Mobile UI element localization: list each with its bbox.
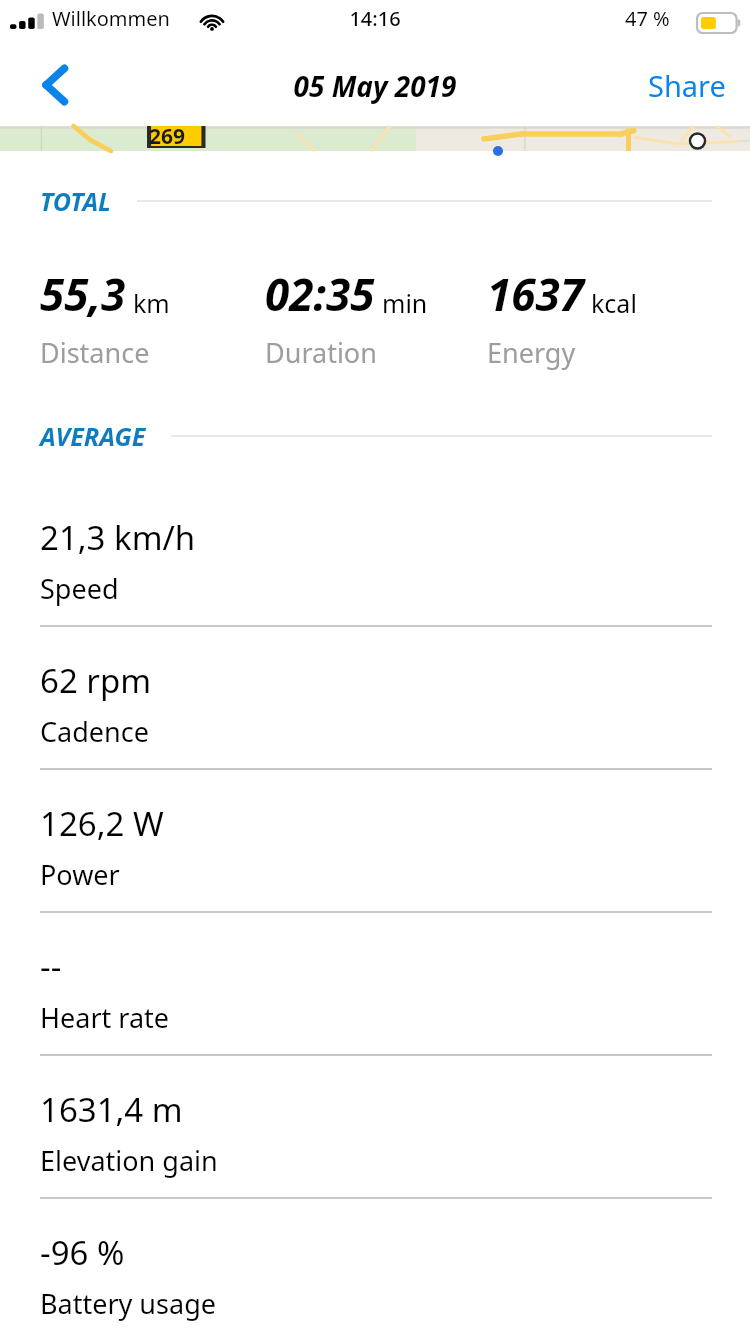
staticText: 269 [149, 122, 186, 151]
staticText: Cadence [40, 713, 149, 750]
button[interactable]: -- [0, 911, 750, 1054]
button[interactable]: 126,2 W [0, 768, 750, 911]
staticText: Willkommen [52, 5, 170, 32]
staticText: 14:16 [0, 5, 750, 32]
staticText: Distance [40, 334, 150, 371]
staticText: 05 May 2019 [0, 67, 750, 105]
staticText: Elevation gain [40, 1142, 218, 1179]
staticText: Share [648, 66, 726, 105]
staticText: 02:35 [265, 264, 375, 324]
staticText: 62 rpm [40, 658, 152, 703]
staticText: -96 % [40, 1230, 125, 1275]
staticText: Duration [265, 334, 377, 371]
button[interactable]: 1631,4 m [0, 1054, 750, 1197]
staticText: kcal [591, 286, 637, 320]
staticText: Heart rate [40, 999, 170, 1036]
staticText: Speed [40, 570, 119, 607]
staticText: Energy [487, 334, 576, 371]
staticText: 1631,4 m [40, 1087, 183, 1132]
staticText: 55,3 [40, 264, 126, 324]
staticText: TOTAL [40, 184, 112, 218]
button[interactable]: Back [14, 44, 96, 126]
staticText: km [133, 286, 170, 320]
staticText: 21,3 km/h [40, 515, 196, 560]
staticText: -- [40, 944, 62, 989]
button[interactable]: 21,3 km/h [0, 482, 750, 625]
staticText: 47 % [625, 5, 670, 32]
staticText: Power [40, 856, 120, 893]
staticText: min [382, 286, 428, 320]
staticText: 1637 [487, 264, 584, 324]
button[interactable]: -96 % [0, 1197, 750, 1334]
button[interactable]: Share [636, 48, 738, 123]
button[interactable]: 62 rpm [0, 625, 750, 768]
staticText: AVERAGE [40, 419, 146, 453]
staticText: 126,2 W [40, 801, 164, 846]
staticText: Battery usage [40, 1285, 216, 1322]
